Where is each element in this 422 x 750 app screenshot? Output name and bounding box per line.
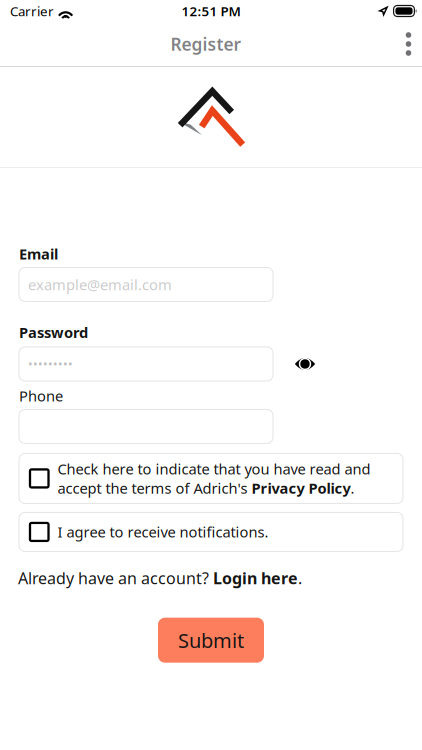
button[interactable]: Already have an account? Login here. [18,567,302,589]
button[interactable]: I agree to receive notifications. [19,512,403,551]
staticText: Carrier [10,2,54,20]
staticText: Register [170,32,241,55]
staticText: ••••••••• [28,356,73,372]
staticText: Phone [19,386,63,405]
staticText: I agree to receive notifications. [57,522,268,542]
staticText: example@email.com [28,275,172,294]
button[interactable]: Check here to indicate that you have rea… [19,453,403,503]
staticText: 12:51 PM [181,2,240,20]
staticText: Already have an account? Login here. [18,567,302,589]
staticText: Password [19,322,88,342]
button[interactable]: More options [395,27,422,61]
button[interactable]: Show password [288,347,322,381]
button[interactable]: Submit [158,618,264,663]
staticText: Check here to indicate that you have rea… [57,459,370,498]
staticText: Submit [178,627,244,653]
staticText: Email [19,244,58,263]
